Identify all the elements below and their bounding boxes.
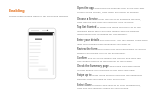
staticText: then exit the settings screen on your ph…: [77, 86, 129, 89]
staticText: is right before you continue to the next…: [77, 68, 136, 71]
staticText: Swipe up to show more options and find t…: [77, 73, 143, 76]
staticText: settings that you need to turn on for th…: [77, 77, 126, 80]
staticText: required fields with your own details an…: [77, 29, 140, 32]
staticText: Tap Get Started to begin the setup and f…: [77, 25, 141, 28]
staticText: Open the app and press the settings icon…: [77, 6, 145, 9]
staticText: Check the Summary page and make sure eve…: [77, 64, 141, 67]
staticText: Choose a Service from the list of all av…: [77, 17, 141, 20]
staticText: Confirm that all of the details are corr…: [77, 56, 141, 59]
staticText: before you submit it to us for processin…: [77, 51, 126, 54]
staticText: information that is needed for the deliv…: [77, 32, 128, 35]
button[interactable]: Phone preview: [28, 28, 56, 79]
staticText: then tap the one that you need for your …: [77, 20, 135, 23]
staticText: Enabling: [9, 8, 25, 13]
staticText: Review the form and check that the infor…: [77, 47, 146, 50]
staticText: later and change them whenever you want …: [77, 42, 132, 45]
staticText: Follow these simple steps to set up phon…: [9, 14, 69, 17]
staticText: corner of the screen, then open the menu…: [77, 10, 140, 13]
staticText: Enter your details into the form. You ca…: [77, 38, 148, 41]
staticText: the confirm button at the bottom of the …: [77, 59, 133, 62]
staticText: Select Done to finish and save all of yo…: [77, 83, 141, 86]
